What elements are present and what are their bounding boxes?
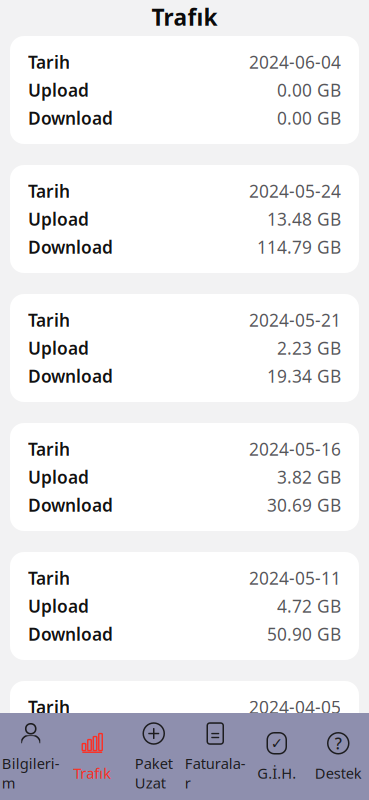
staticText: Download [28, 493, 113, 516]
staticText: 4.72 GB [277, 594, 341, 617]
staticText: Trafık [151, 2, 217, 32]
staticText: Upload [28, 336, 89, 359]
staticText: Paket Uzat [135, 753, 173, 792]
staticText: 2024-05-21 [249, 308, 341, 331]
staticText: Tarih [28, 50, 70, 73]
button[interactable]: ? [307, 713, 369, 800]
staticText: Download [28, 364, 113, 387]
staticText: Download [28, 106, 113, 129]
staticText: 2024-05-11 [249, 566, 341, 589]
staticText: Download [28, 235, 113, 258]
staticText: G.İ.H. [257, 763, 296, 783]
staticText: Upload [28, 78, 89, 101]
staticText: Upload [28, 594, 89, 617]
button[interactable]: ✓ [246, 713, 307, 800]
staticText: Bilgilerim [2, 753, 60, 792]
staticText: 30.69 GB [267, 493, 341, 516]
staticText: Upload [28, 723, 89, 746]
staticText: 2024-04-05 [249, 695, 341, 718]
staticText: 50.90 GB [267, 622, 341, 645]
button[interactable]: Trafık [61, 713, 123, 800]
staticText: Upload [28, 465, 89, 488]
staticText: Faturalar [185, 753, 246, 792]
staticText: 114.79 GB [257, 235, 341, 258]
staticText: Download [28, 622, 113, 645]
staticText: Tarih [28, 695, 70, 718]
staticText: 8.40 GB [277, 751, 341, 774]
button[interactable]: Bilgilerim [0, 713, 61, 800]
staticText: 26.15 GB [267, 723, 341, 746]
staticText: 2.23 GB [277, 336, 341, 359]
staticText: Tarih [28, 179, 70, 202]
button[interactable]: Faturalar [184, 713, 246, 800]
staticText: 3.82 GB [277, 465, 341, 488]
staticText: 13.48 GB [267, 207, 341, 230]
staticText: 2024-06-04 [249, 50, 341, 73]
staticText: Tarih [28, 566, 70, 589]
staticText: Tarih [28, 437, 70, 460]
staticText: ✓ [271, 735, 283, 751]
staticText: ? [335, 733, 342, 754]
button[interactable]: Paket Uzat [123, 713, 184, 800]
staticText: Trafık [73, 763, 111, 783]
staticText: Tarih [28, 308, 70, 331]
staticText: Destek [315, 763, 362, 783]
staticText: Download [28, 751, 113, 774]
staticText: 19.34 GB [267, 364, 341, 387]
staticText: 0.00 GB [277, 106, 341, 129]
staticText: 0.00 GB [277, 78, 341, 101]
staticText: 2024-05-24 [249, 179, 341, 202]
staticText: Upload [28, 207, 89, 230]
staticText: 2024-05-16 [249, 437, 341, 460]
